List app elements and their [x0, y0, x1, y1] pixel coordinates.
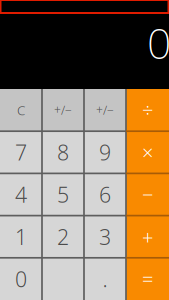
- button[interactable]: +/−: [42, 89, 84, 131]
- staticText: 5: [57, 180, 69, 209]
- button[interactable]: 2: [42, 216, 84, 258]
- staticText: =: [142, 266, 153, 292]
- button[interactable]: 5: [42, 173, 84, 216]
- staticText: 3: [99, 222, 111, 251]
- staticText: +: [142, 223, 153, 250]
- button[interactable]: 3: [84, 216, 126, 258]
- staticText: 7: [15, 138, 27, 166]
- button[interactable]: 0: [0, 258, 84, 300]
- staticText: 0: [15, 265, 27, 293]
- button[interactable]: 4: [0, 173, 42, 216]
- button[interactable]: Divide: [126, 89, 169, 131]
- button[interactable]: Multiply: [126, 131, 169, 173]
- button[interactable]: +/−: [84, 89, 126, 131]
- staticText: 4: [15, 180, 27, 209]
- staticText: 8: [57, 138, 69, 166]
- staticText: +/−: [54, 102, 72, 118]
- staticText: 2: [57, 222, 69, 251]
- button[interactable]: C: [0, 89, 42, 131]
- button[interactable]: 8: [42, 131, 84, 173]
- staticText: .: [102, 265, 107, 293]
- staticText: −: [142, 181, 153, 208]
- button[interactable]: Plus: [126, 216, 169, 258]
- staticText: ×: [142, 139, 153, 166]
- button[interactable]: 9: [84, 131, 126, 173]
- staticText: 1: [15, 222, 27, 251]
- staticText: 6: [99, 180, 111, 209]
- button[interactable]: 1: [0, 216, 42, 258]
- button[interactable]: .: [84, 258, 126, 300]
- staticText: 0: [147, 14, 169, 71]
- button[interactable]: 6: [84, 173, 126, 216]
- button[interactable]: Minus: [126, 173, 169, 216]
- staticText: C: [17, 101, 25, 119]
- button[interactable]: 7: [0, 131, 42, 173]
- staticText: ÷: [142, 97, 153, 123]
- button[interactable]: Equals: [126, 258, 169, 300]
- staticText: 9: [99, 138, 111, 166]
- staticText: +/−: [96, 102, 114, 118]
